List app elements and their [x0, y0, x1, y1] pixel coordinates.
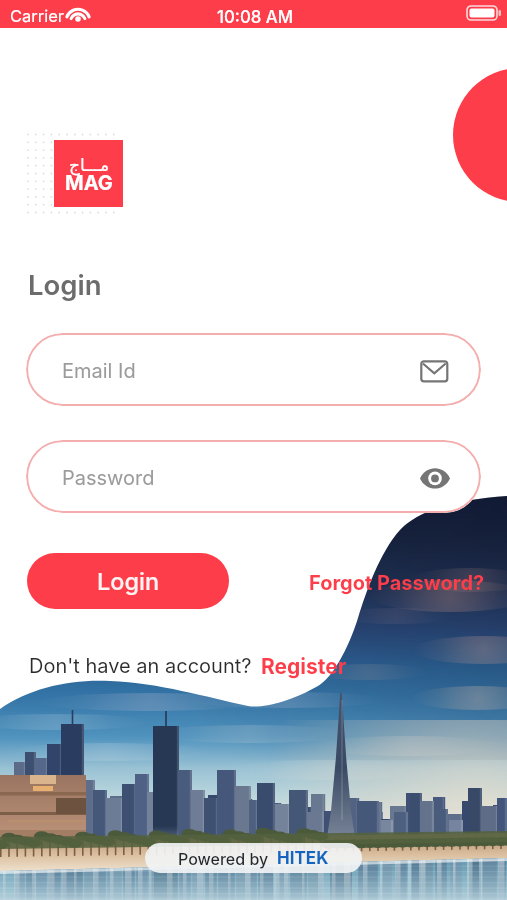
- staticText: 10:08 AM: [217, 7, 294, 27]
- button[interactable]: Email Id: [26, 333, 481, 406]
- staticText: Login: [28, 268, 102, 301]
- staticText: Login: [97, 567, 160, 595]
- staticText: Email Id: [62, 359, 136, 383]
- button[interactable]: Password: [26, 440, 481, 513]
- button[interactable]: مـــاج: [54, 140, 123, 207]
- staticText: Powered by: [178, 849, 269, 868]
- button[interactable]: Powered by: [145, 843, 362, 873]
- staticText: Forgot Password?: [309, 571, 485, 595]
- button[interactable]: Show password: [416, 462, 454, 494]
- staticText: HITEK: [277, 848, 329, 869]
- staticText: Register: [261, 654, 347, 679]
- button[interactable]: Forgot Password?: [307, 569, 487, 597]
- button[interactable]: Login: [27, 553, 229, 609]
- button[interactable]: Register: [261, 653, 353, 681]
- staticText: Carrier: [10, 6, 65, 26]
- staticText: مـــاج: [69, 155, 110, 175]
- staticText: Password: [62, 466, 155, 490]
- staticText: MAG: [65, 171, 113, 195]
- staticText: Don't have an account?: [29, 654, 252, 678]
